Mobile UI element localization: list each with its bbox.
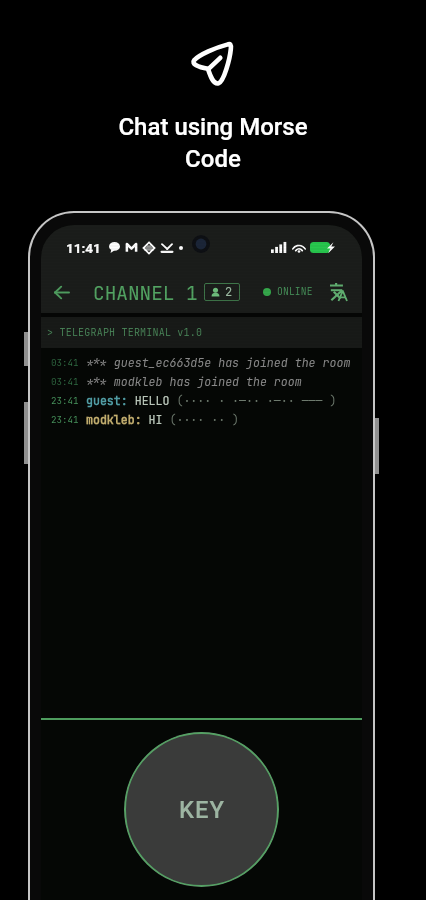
staticText: 23:41 xyxy=(51,414,79,426)
staticText: 11:41 xyxy=(66,240,101,256)
staticText: guest: HELLO (···· · ·—·· ·—·· ——— ) xyxy=(86,393,337,408)
staticText: modkleb: HI (···· ·· ) xyxy=(86,412,240,427)
staticText: Chat using Morse Code xyxy=(118,113,308,172)
staticText: 03:41 xyxy=(51,357,79,369)
staticText: *** guest_ec663d5e has joined the room xyxy=(86,355,351,370)
staticText: 23:41 xyxy=(51,395,79,407)
staticText: KEY xyxy=(179,796,225,824)
staticText: > TELEGRAPH TERMINAL v1.0 xyxy=(47,326,202,339)
staticText: 03:41 xyxy=(51,376,79,388)
staticText: CHANNEL 1 xyxy=(93,280,198,306)
staticText: ONLINE xyxy=(277,285,313,298)
button[interactable]: Translate xyxy=(327,278,349,306)
button[interactable]: KEY xyxy=(124,732,279,887)
staticText: 2 xyxy=(225,284,233,300)
button[interactable]: 2 xyxy=(204,283,240,301)
staticText: *** modkleb has joined the room xyxy=(86,374,302,389)
button[interactable]: Back xyxy=(50,277,72,307)
